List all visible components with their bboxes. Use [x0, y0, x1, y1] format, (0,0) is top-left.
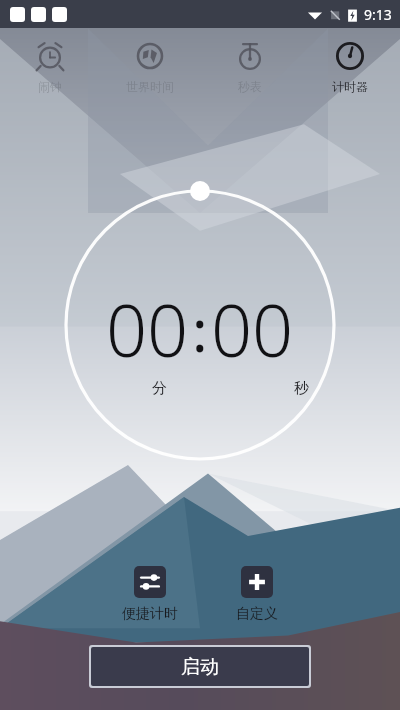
staticText: 秒	[294, 379, 309, 398]
button[interactable]: 计时器	[300, 28, 400, 106]
button[interactable]: 闹钟	[0, 28, 100, 106]
staticText: 计时器	[332, 79, 368, 94]
other: 自定义	[246, 571, 268, 593]
staticText: 00	[211, 280, 294, 378]
staticText: 便捷计时	[122, 605, 178, 623]
button[interactable]: 启动	[91, 647, 309, 686]
staticText: 00	[106, 280, 189, 378]
staticText: 秒表	[238, 79, 262, 94]
staticText: :	[192, 290, 208, 369]
button[interactable]: 便捷计时	[122, 566, 178, 623]
staticText: 启动	[181, 655, 219, 679]
staticText: 世界时间	[126, 79, 174, 94]
button[interactable]: 世界时间	[100, 28, 200, 106]
button[interactable]: 自定义	[236, 566, 278, 623]
staticText: 自定义	[236, 605, 278, 623]
staticText: 分	[152, 379, 167, 398]
staticText: 闹钟	[38, 79, 62, 94]
staticText: 9:13	[364, 5, 392, 24]
button[interactable]: 秒表	[200, 28, 300, 106]
other: 便捷计时	[139, 571, 161, 593]
